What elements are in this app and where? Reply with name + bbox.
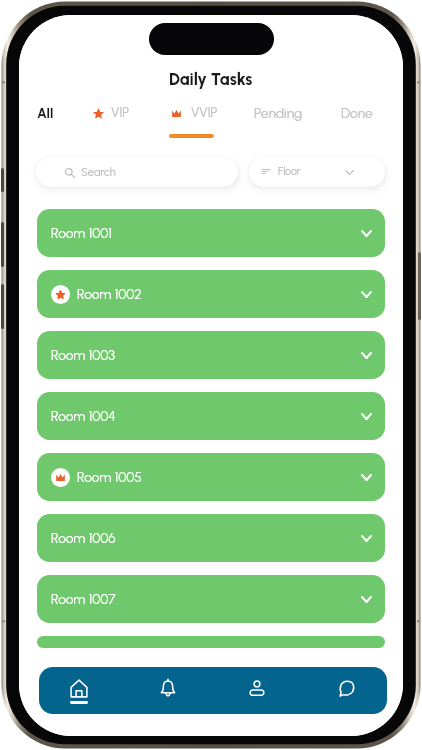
button[interactable]: Room 1003 bbox=[37, 331, 385, 379]
button[interactable]: Room 1004 bbox=[37, 392, 385, 440]
button[interactable]: Room 1005 bbox=[37, 453, 385, 501]
staticText: All bbox=[37, 105, 54, 121]
button[interactable]: Room 1008 bbox=[37, 636, 385, 648]
staticText: VVIP bbox=[191, 105, 218, 121]
button[interactable]: Messages bbox=[315, 667, 379, 714]
staticText: Room 1007 bbox=[51, 591, 116, 607]
staticText: Search bbox=[81, 165, 116, 178]
button[interactable]: Room 1001 bbox=[37, 209, 385, 257]
button[interactable]: All tab bbox=[33, 101, 57, 127]
staticText: Room 1004 bbox=[51, 408, 116, 424]
button[interactable]: Done tab bbox=[336, 101, 376, 127]
staticText: Room 1005 bbox=[77, 469, 142, 485]
staticText: Daily Tasks bbox=[169, 70, 253, 90]
button[interactable]: VIP tab bbox=[90, 101, 136, 127]
button[interactable]: Pending tab bbox=[250, 101, 306, 127]
button[interactable]: Room 1002 bbox=[37, 270, 385, 318]
button[interactable]: Notifications bbox=[137, 667, 201, 714]
staticText: VIP bbox=[111, 105, 130, 121]
staticText: Room 1002 bbox=[77, 286, 142, 302]
staticText: Room 1006 bbox=[51, 530, 116, 546]
staticText: Room 1001 bbox=[51, 225, 112, 241]
button[interactable]: Home bbox=[47, 667, 111, 714]
staticText: Pending bbox=[254, 105, 303, 122]
staticText: Done bbox=[341, 105, 373, 121]
button[interactable] bbox=[36, 157, 238, 187]
button[interactable]: Profile bbox=[225, 667, 289, 714]
button[interactable]: Room 1007 bbox=[37, 575, 385, 623]
button[interactable]: Room 1006 bbox=[37, 514, 385, 562]
staticText: Floor bbox=[278, 165, 301, 178]
button[interactable] bbox=[249, 157, 385, 187]
staticText: Room 1003 bbox=[51, 347, 116, 363]
button[interactable]: VVIP tab bbox=[168, 101, 220, 127]
